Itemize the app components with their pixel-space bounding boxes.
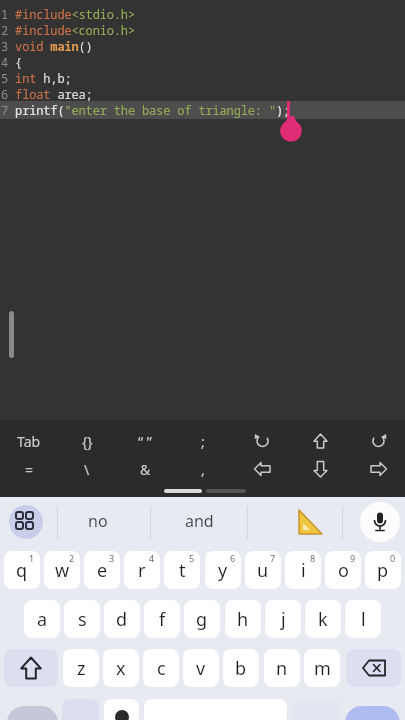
button[interactable] bbox=[231, 424, 289, 458]
button[interactable] bbox=[346, 649, 401, 687]
staticText: k bbox=[318, 607, 328, 632]
staticText: , bbox=[201, 460, 205, 479]
button[interactable]: p bbox=[365, 551, 401, 589]
button[interactable]: u bbox=[245, 551, 281, 589]
button[interactable]: g bbox=[184, 600, 220, 638]
staticText: 0 bbox=[390, 552, 396, 564]
staticText: 2 bbox=[69, 552, 75, 564]
button[interactable]: e bbox=[84, 551, 120, 589]
button[interactable]: r bbox=[124, 551, 160, 589]
button[interactable]: “ ” bbox=[116, 424, 174, 458]
staticText: e bbox=[97, 558, 108, 583]
button[interactable]: \ bbox=[58, 453, 116, 485]
staticText: l bbox=[361, 607, 366, 632]
button[interactable]: s bbox=[64, 600, 100, 638]
staticText: 3 void main() bbox=[1, 38, 93, 54]
button[interactable]: k bbox=[305, 600, 341, 638]
staticText: s bbox=[78, 607, 87, 632]
button[interactable]: m bbox=[304, 649, 340, 687]
button[interactable]: y bbox=[205, 551, 241, 589]
staticText: 5 int h,b; bbox=[1, 70, 72, 86]
staticText: n bbox=[276, 656, 288, 681]
staticText: j bbox=[281, 607, 286, 632]
button[interactable] bbox=[231, 453, 289, 485]
button[interactable] bbox=[289, 453, 347, 485]
staticText: c bbox=[157, 656, 166, 681]
staticText: v bbox=[196, 656, 206, 681]
staticText: o bbox=[338, 558, 349, 583]
button[interactable]: b bbox=[223, 649, 259, 687]
staticText: 6 bbox=[230, 552, 236, 564]
button[interactable] bbox=[345, 706, 400, 720]
button[interactable] bbox=[248, 497, 342, 545]
staticText: q bbox=[16, 558, 28, 583]
button[interactable] bbox=[104, 699, 139, 720]
staticText: \ bbox=[84, 460, 90, 479]
button[interactable]: l bbox=[345, 600, 381, 638]
staticText: 2 #include<conio.h> bbox=[1, 22, 135, 38]
staticText: f bbox=[159, 607, 166, 632]
staticText: 1 #include<stdio.h> bbox=[1, 6, 135, 22]
staticText: x bbox=[116, 656, 126, 681]
staticText: 6 float area; bbox=[1, 86, 93, 102]
button[interactable]: o bbox=[325, 551, 361, 589]
button[interactable] bbox=[9, 505, 43, 539]
button[interactable]: a bbox=[24, 600, 60, 638]
staticText: i bbox=[301, 558, 306, 583]
button[interactable] bbox=[7, 706, 58, 720]
button[interactable]: Tab bbox=[0, 424, 58, 458]
button[interactable]: w bbox=[44, 551, 80, 589]
staticText: 7 bbox=[270, 552, 276, 564]
staticText: 4 bbox=[149, 552, 155, 564]
button[interactable]: = bbox=[0, 453, 58, 485]
staticText: and bbox=[185, 510, 214, 532]
staticText: m bbox=[314, 656, 331, 681]
button[interactable]: d bbox=[104, 600, 140, 638]
staticText: Tab bbox=[17, 432, 41, 451]
button[interactable]: z bbox=[63, 649, 99, 687]
staticText: 4 { bbox=[1, 54, 23, 70]
button[interactable]: {} bbox=[58, 424, 116, 458]
staticText: “ ” bbox=[138, 432, 152, 451]
button[interactable]: n bbox=[264, 649, 300, 687]
staticText: 7 printf("enter the base of triangle: ")… bbox=[1, 102, 291, 118]
staticText: a bbox=[37, 607, 48, 632]
button[interactable]: j bbox=[265, 600, 301, 638]
staticText: w bbox=[55, 558, 70, 583]
button[interactable]: , bbox=[174, 453, 232, 485]
button[interactable]: and bbox=[151, 497, 247, 545]
button[interactable] bbox=[4, 649, 58, 687]
button[interactable]: c bbox=[143, 649, 179, 687]
button[interactable]: ; bbox=[174, 424, 232, 458]
staticText: t bbox=[179, 558, 186, 583]
staticText: 8 bbox=[310, 552, 316, 564]
staticText: p bbox=[377, 558, 389, 583]
staticText: u bbox=[257, 558, 269, 583]
staticText: = bbox=[25, 460, 34, 479]
staticText: no bbox=[88, 510, 108, 532]
staticText: {} bbox=[82, 432, 93, 451]
staticText: h bbox=[237, 607, 249, 632]
staticText: b bbox=[235, 656, 247, 681]
button[interactable] bbox=[360, 502, 400, 542]
staticText: y bbox=[218, 558, 228, 583]
button[interactable]: t bbox=[164, 551, 200, 589]
button[interactable]: q bbox=[4, 551, 40, 589]
button[interactable]: h bbox=[225, 600, 261, 638]
staticText: z bbox=[77, 656, 86, 681]
button[interactable] bbox=[347, 424, 405, 458]
staticText: d bbox=[116, 607, 128, 632]
button[interactable]: f bbox=[144, 600, 180, 638]
button[interactable]: no bbox=[52, 497, 144, 545]
button[interactable] bbox=[347, 453, 405, 485]
staticText: & bbox=[140, 460, 151, 479]
button[interactable]: & bbox=[116, 453, 174, 485]
staticText: 1 bbox=[29, 552, 35, 564]
button[interactable]: v bbox=[183, 649, 219, 687]
button[interactable]: x bbox=[103, 649, 139, 687]
button[interactable] bbox=[289, 424, 347, 458]
button[interactable]: i bbox=[285, 551, 321, 589]
